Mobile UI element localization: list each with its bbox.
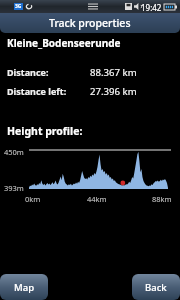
button[interactable]: Map bbox=[0, 274, 48, 300]
staticText: Height profile: bbox=[7, 124, 83, 138]
staticText: Distance: bbox=[7, 66, 90, 78]
staticText: 450m bbox=[4, 147, 24, 157]
staticText: 27.396 km bbox=[90, 85, 137, 98]
staticText: 19:42 bbox=[141, 2, 162, 13]
staticText: Distance left: bbox=[7, 85, 90, 97]
button[interactable]: Back bbox=[132, 274, 180, 300]
staticText: Map bbox=[14, 281, 35, 294]
staticText: 88km bbox=[152, 194, 172, 204]
staticText: Back bbox=[145, 281, 167, 294]
staticText: 88.367 km bbox=[90, 66, 137, 79]
staticText: 0km bbox=[25, 194, 41, 204]
staticText: 393m bbox=[4, 183, 24, 193]
staticText: 44km bbox=[87, 194, 107, 204]
staticText: Kleine_Bodenseerunde bbox=[7, 36, 121, 50]
staticText: Track properties bbox=[49, 16, 131, 30]
staticText: 3G bbox=[15, 3, 22, 10]
